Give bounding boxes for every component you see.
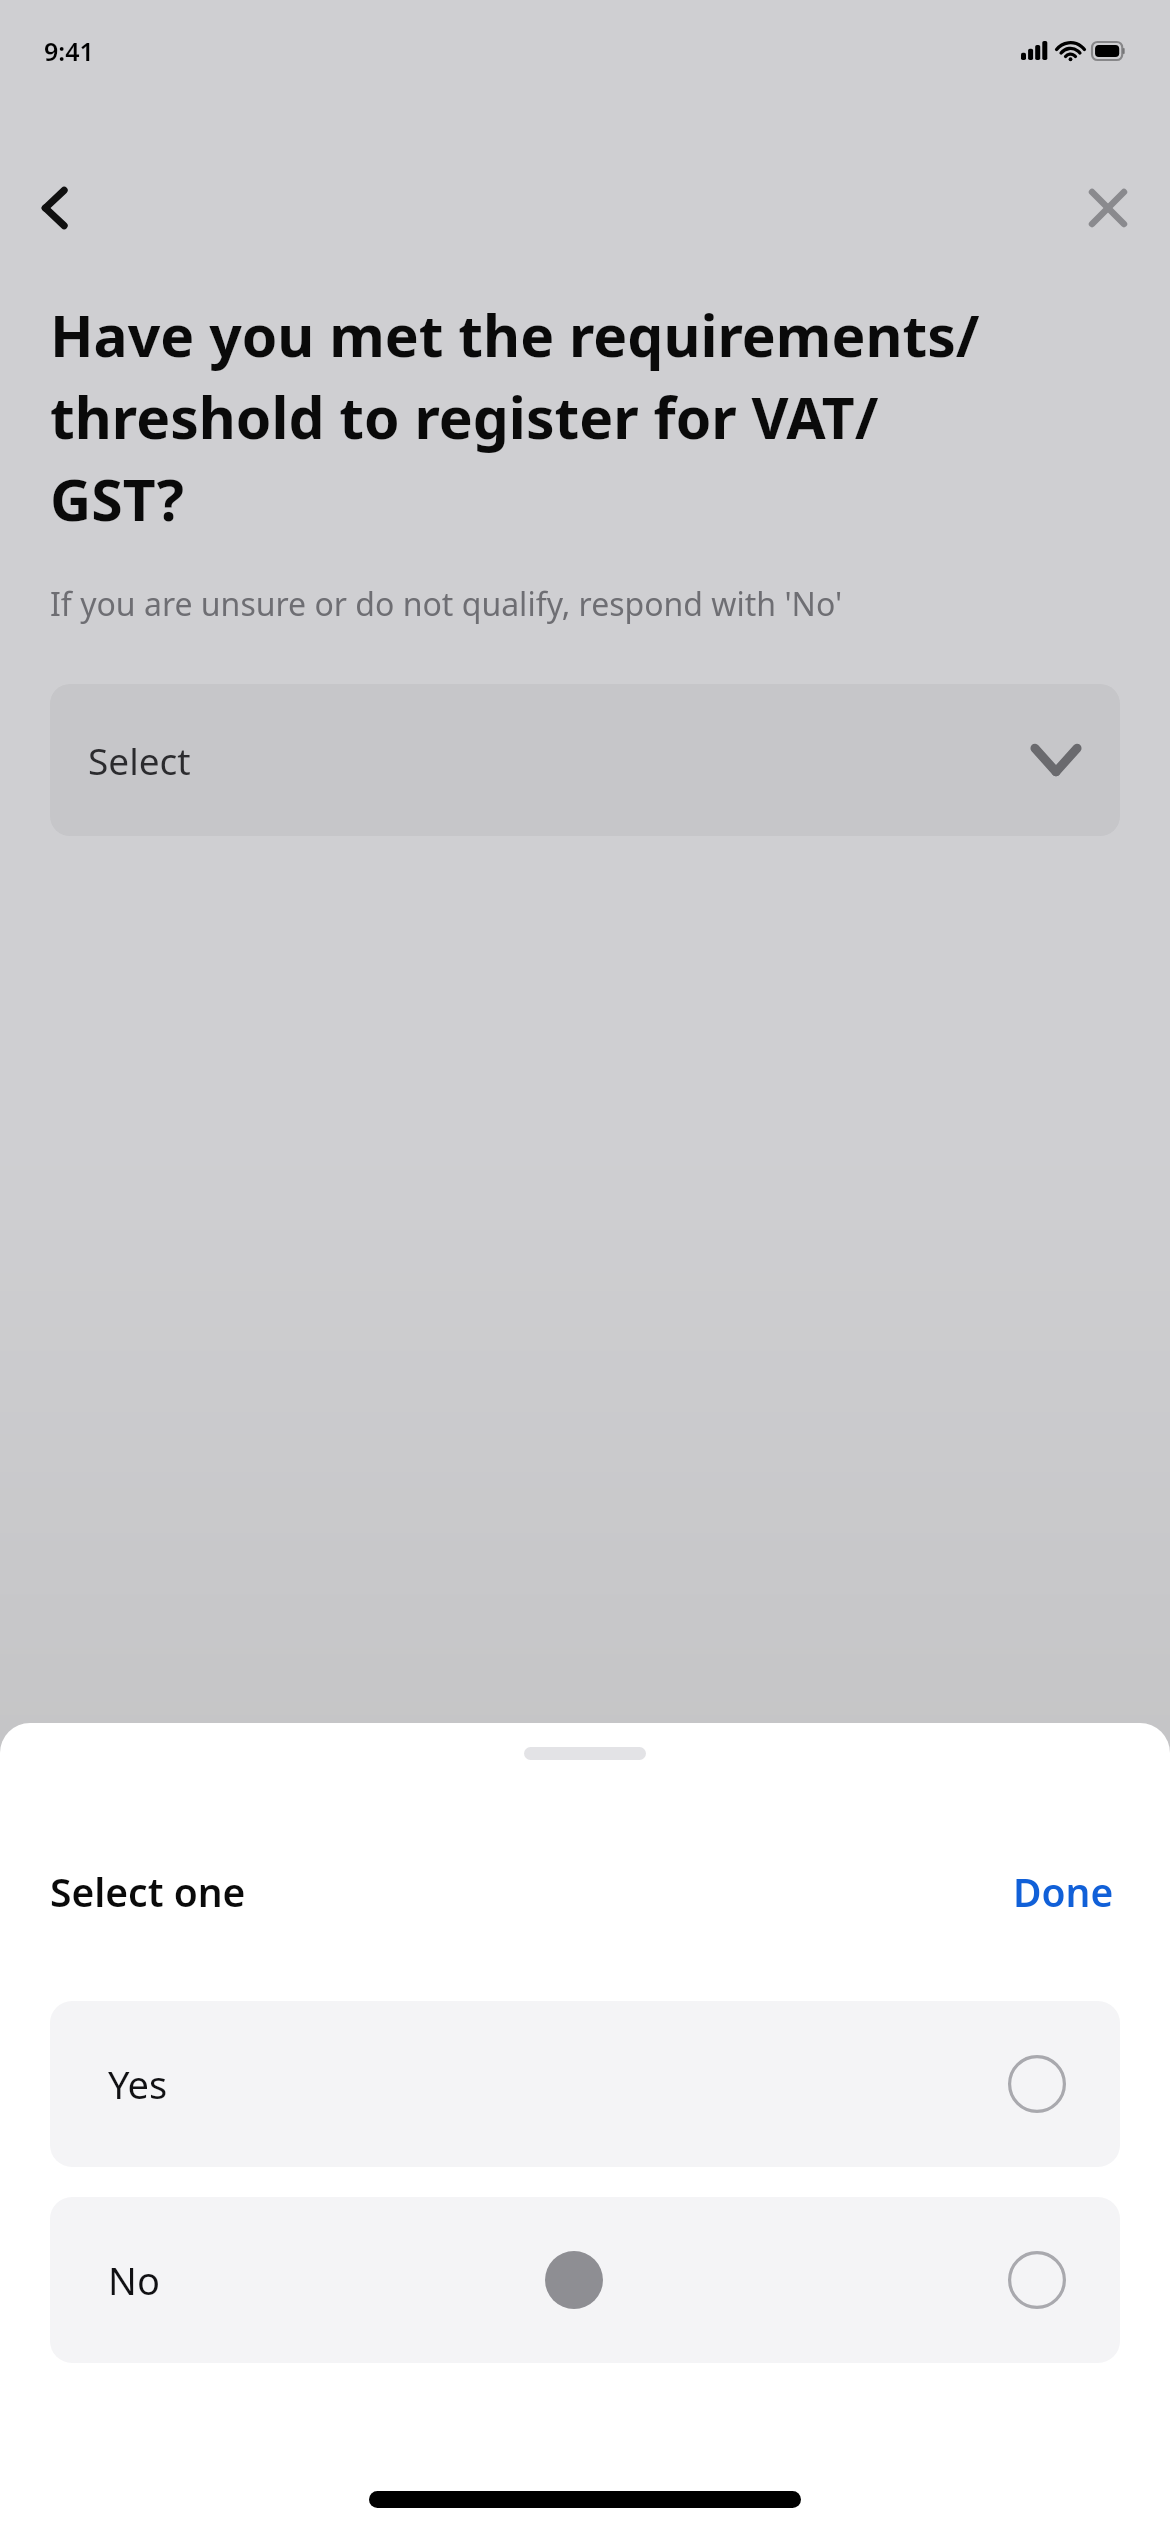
staticText: 9:41 <box>44 34 94 68</box>
staticText: If you are unsure or do not qualify, res… <box>50 582 843 626</box>
staticText: Yes <box>108 2058 168 2110</box>
button[interactable]: Back <box>10 164 98 252</box>
staticText: Have you met the requirements/ threshold… <box>50 296 980 538</box>
button[interactable]: No <box>50 2197 1120 2363</box>
staticText: Select one <box>50 1865 246 1918</box>
button[interactable]: Select <box>50 684 1120 836</box>
button[interactable]: Done <box>1007 1855 1120 1928</box>
staticText: Select <box>88 735 191 785</box>
button[interactable]: Close <box>1064 164 1152 252</box>
staticText: Done <box>1013 1865 1114 1918</box>
button[interactable]: Yes <box>50 2001 1120 2167</box>
staticText: No <box>108 2254 160 2306</box>
